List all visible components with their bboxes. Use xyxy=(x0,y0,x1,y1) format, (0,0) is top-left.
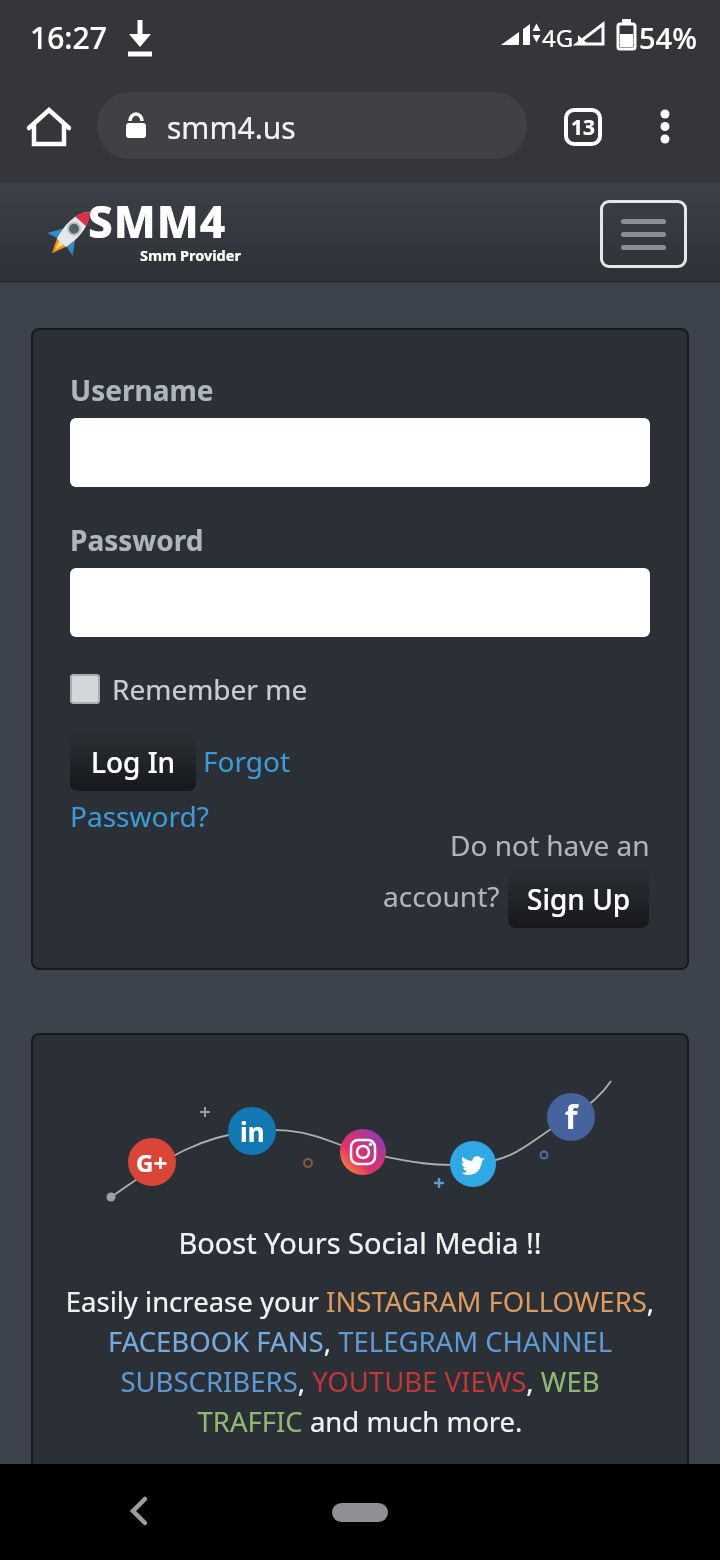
staticText: Smm Provider xyxy=(140,245,241,265)
staticText: smm4.us xyxy=(167,107,296,148)
staticText: 4G xyxy=(542,21,574,54)
button[interactable]: Password? xyxy=(70,797,209,835)
staticText: Easily increase your INSTAGRAM FOLLOWERS… xyxy=(31,1283,689,1320)
staticText: SMM4 xyxy=(88,191,227,251)
button[interactable] xyxy=(655,107,675,147)
staticText: in xyxy=(240,1114,265,1149)
staticText: 16:27 xyxy=(30,17,107,58)
button[interactable] xyxy=(25,103,73,151)
staticText: Do not have an xyxy=(450,826,650,864)
button[interactable] xyxy=(600,200,687,268)
button[interactable] xyxy=(120,1491,160,1531)
staticText: SUBSCRIBERS, YOUTUBE VIEWS, WEB xyxy=(31,1363,689,1400)
staticText: 54% xyxy=(639,18,697,57)
staticText: Sign Up xyxy=(527,880,631,918)
staticText: Log In xyxy=(91,743,176,781)
button[interactable]: Sign Up xyxy=(508,869,649,928)
staticText: account? xyxy=(383,877,500,915)
staticText: FACEBOOK FANS, TELEGRAM CHANNEL xyxy=(31,1323,689,1360)
button[interactable]: Remember me xyxy=(70,670,308,708)
button[interactable] xyxy=(332,1503,388,1522)
staticText: TRAFFIC and much more. xyxy=(31,1403,689,1440)
button[interactable]: smm4.us xyxy=(97,92,527,159)
staticText: Remember me xyxy=(112,670,308,708)
staticText: Username xyxy=(70,371,214,409)
staticText: 13 xyxy=(571,113,596,142)
staticText: Password xyxy=(70,521,204,559)
button[interactable] xyxy=(70,418,650,487)
staticText: G+ xyxy=(136,1146,168,1179)
button[interactable]: Forgot xyxy=(203,742,291,780)
button[interactable] xyxy=(70,568,650,637)
button[interactable]: Log In xyxy=(70,733,196,791)
staticText: Boost Yours Social Media !! xyxy=(31,1223,689,1262)
button[interactable]: 13 xyxy=(564,108,602,146)
staticText: f xyxy=(565,1095,578,1139)
